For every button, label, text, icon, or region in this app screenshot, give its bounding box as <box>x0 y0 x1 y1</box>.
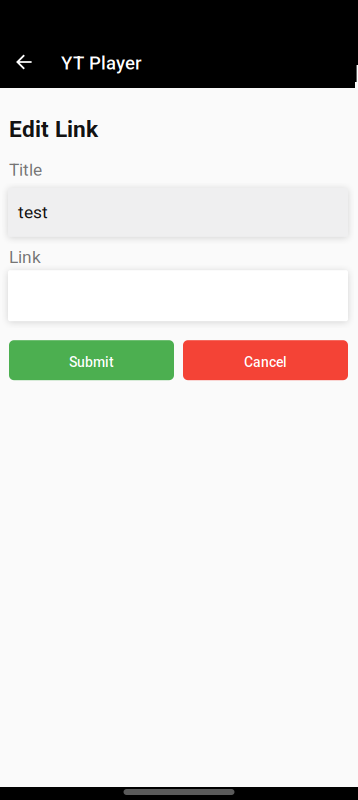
staticText: test <box>18 202 48 222</box>
staticText: Submit <box>69 354 114 370</box>
staticText: Edit Link <box>9 116 98 143</box>
staticText: YT Player <box>61 52 142 74</box>
button[interactable]: Submit <box>9 340 174 380</box>
staticText: Link <box>9 247 41 267</box>
button[interactable]: Back <box>0 46 46 78</box>
button[interactable]: Cancel <box>183 340 348 380</box>
staticText: Cancel <box>244 354 287 370</box>
staticText: Title <box>9 160 42 180</box>
